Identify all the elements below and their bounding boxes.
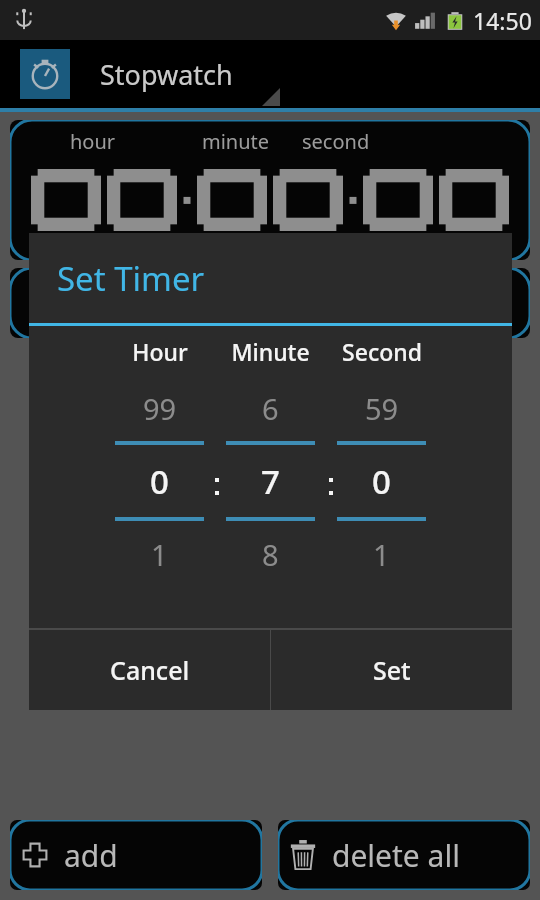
button[interactable]: 0 — [104, 445, 215, 517]
staticText: minute — [202, 128, 270, 155]
staticText: Stopwatch — [100, 56, 233, 93]
button[interactable]: 7 — [215, 445, 326, 517]
button[interactable]: 1 — [326, 533, 437, 575]
staticText: 0 — [150, 459, 169, 504]
button[interactable]: 1 — [104, 533, 215, 575]
staticText: Second — [342, 336, 422, 367]
button[interactable]: Set — [271, 630, 512, 710]
button[interactable]: Cancel — [29, 630, 270, 710]
button[interactable]: 59 — [326, 387, 437, 429]
staticText: 99 — [143, 389, 177, 428]
button[interactable]: 8 — [215, 533, 326, 575]
staticText: add — [64, 835, 118, 876]
staticText: 0 — [372, 459, 391, 504]
staticText: 7 — [261, 459, 280, 504]
staticText: 8 — [262, 535, 279, 574]
button[interactable]: 6 — [215, 387, 326, 429]
staticText: 59 — [365, 389, 399, 428]
staticText: Cancel — [110, 653, 190, 687]
staticText: hour — [70, 128, 116, 155]
button[interactable]: App icon — [20, 49, 70, 99]
staticText: 14:50 — [473, 5, 532, 36]
button[interactable]: 0 — [326, 445, 437, 517]
button[interactable]: Add lap — [10, 820, 262, 890]
button[interactable]: 99 — [104, 387, 215, 429]
button[interactable]: Delete all laps — [278, 820, 530, 890]
staticText: second — [302, 128, 370, 155]
staticText: delete all — [332, 835, 460, 876]
staticText: Hour — [132, 336, 188, 367]
staticText: 6 — [262, 389, 279, 428]
staticText: Minute — [231, 336, 310, 367]
staticText: Set — [373, 653, 411, 687]
staticText: Set Timer — [57, 256, 205, 301]
staticText: 1 — [151, 535, 168, 574]
staticText: 1 — [373, 535, 390, 574]
